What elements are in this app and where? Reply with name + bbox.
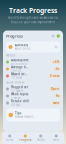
- staticText: Average time: [11, 65, 30, 69]
- staticText: Progress: [6, 33, 23, 39]
- staticText: Accuracy rate: [11, 58, 29, 62]
- staticText: 3 new: [50, 74, 59, 78]
- button[interactable]: Missed items: [3, 72, 63, 79]
- staticText: -4s: [55, 67, 59, 71]
- button[interactable]: Flagged set: [3, 85, 63, 92]
- staticText: Quick review: [6, 81, 24, 84]
- staticText: 5 areas: [11, 96, 20, 99]
- staticText: Tips: [15, 111, 21, 115]
- staticText: focus on your next improvement: [11, 20, 55, 24]
- button[interactable]: Progress: [17, 131, 33, 144]
- staticText: Flagged set: [11, 85, 28, 89]
- staticText: Missed items: [11, 72, 28, 76]
- staticText: Summary: [14, 43, 27, 47]
- staticText: Study: [37, 138, 44, 141]
- staticText: Start: [53, 101, 59, 105]
- staticText: Track Progress: [9, 6, 57, 15]
- staticText: Progress: [19, 138, 31, 141]
- button[interactable]: Weak topics: [3, 92, 63, 99]
- button[interactable]: Live status: [55, 33, 61, 39]
- button[interactable]: Accuracy rate: [3, 58, 63, 65]
- staticText: 2d ago: [11, 103, 21, 106]
- button[interactable]: Summary: [6, 41, 60, 52]
- button[interactable]: More: [48, 131, 64, 144]
- staticText: Open: [51, 87, 59, 91]
- staticText: 1m 12s: [11, 69, 21, 72]
- staticText: 82% correct: [11, 62, 27, 65]
- staticText: Review missed items first, then: [15, 115, 35, 118]
- button[interactable]: Study: [33, 131, 48, 144]
- staticText: +6%: [53, 60, 59, 64]
- staticText: Retake drill: [11, 99, 29, 103]
- staticText: Score trending up this week: [14, 47, 32, 50]
- staticText: More: [53, 138, 60, 141]
- button[interactable]: Filter: [50, 33, 55, 38]
- staticText: 12 saved: [11, 89, 23, 92]
- staticText: Fix: [56, 94, 59, 98]
- staticText: Metrics: [6, 54, 15, 57]
- button[interactable]: Average time: [3, 65, 63, 72]
- button[interactable]: Home: [2, 131, 17, 144]
- staticText: Home: [6, 138, 14, 141]
- button[interactable]: Retake drill: [3, 99, 63, 106]
- staticText: Weak topics: [11, 92, 28, 96]
- staticText: Identify strengths and weaknesses to: [7, 16, 58, 19]
- staticText: 14 total: [11, 76, 22, 79]
- button[interactable]: Tips: [6, 106, 60, 121]
